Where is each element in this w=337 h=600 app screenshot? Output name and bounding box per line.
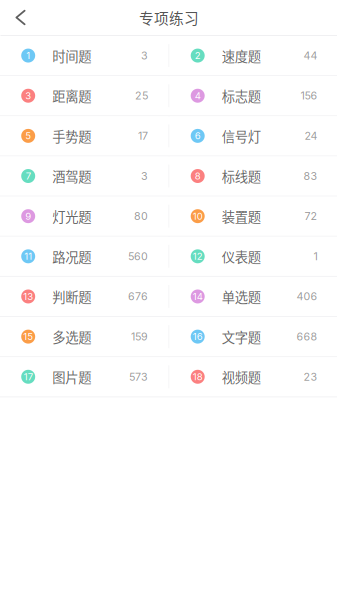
button[interactable]: 11 (0, 237, 168, 276)
staticText: 676 (128, 290, 148, 303)
staticText: 判断题 (52, 287, 91, 306)
button[interactable]: 13 (0, 277, 168, 316)
staticText: 44 (303, 49, 317, 62)
staticText: 3 (141, 49, 148, 62)
staticText: 图片题 (52, 367, 91, 386)
button[interactable]: 16 (169, 317, 337, 356)
staticText: 3 (25, 90, 31, 101)
staticText: 156 (300, 89, 317, 102)
staticText: 72 (304, 210, 317, 223)
staticText: 11 (24, 250, 32, 262)
staticText: 酒驾题 (52, 166, 91, 186)
staticText: 10 (193, 210, 203, 222)
staticText: 23 (303, 370, 317, 383)
button[interactable]: 18 (169, 357, 337, 396)
staticText: 信号灯 (222, 126, 261, 145)
staticText: 专项练习 (139, 7, 199, 28)
staticText: 14 (193, 291, 203, 302)
staticText: 1 (26, 50, 30, 61)
staticText: 标志题 (222, 86, 261, 105)
staticText: 13 (23, 291, 33, 302)
staticText: 路况题 (52, 247, 91, 266)
staticText: 25 (135, 89, 148, 102)
button[interactable]: 3 (0, 76, 168, 115)
staticText: 16 (193, 331, 203, 342)
staticText: 仪表题 (222, 247, 261, 266)
staticText: 573 (129, 370, 148, 383)
button[interactable]: 1 (0, 36, 168, 75)
staticText: 距离题 (52, 86, 91, 105)
staticText: 多选题 (52, 327, 91, 346)
staticText: 视频题 (222, 367, 261, 386)
staticText: 17 (24, 371, 33, 383)
staticText: 560 (128, 250, 148, 263)
staticText: 1 (313, 250, 317, 263)
button[interactable]: 7 (0, 156, 168, 195)
staticText: 406 (296, 290, 317, 303)
button[interactable]: 9 (0, 197, 168, 236)
staticText: 灯光题 (52, 206, 91, 226)
button[interactable]: 4 (169, 76, 337, 115)
staticText: 83 (303, 170, 317, 182)
staticText: 速度题 (222, 46, 261, 65)
staticText: 12 (193, 250, 203, 262)
staticText: 时间题 (52, 46, 91, 65)
staticText: 15 (23, 331, 33, 342)
staticText: 2 (195, 50, 201, 61)
button[interactable]: 14 (169, 277, 337, 316)
staticText: 24 (304, 129, 317, 142)
staticText: 手势题 (52, 126, 91, 145)
staticText: 单选题 (222, 287, 261, 306)
button[interactable]: Back (0, 1, 37, 34)
staticText: 3 (141, 170, 148, 182)
staticText: 4 (195, 90, 201, 101)
button[interactable]: 12 (169, 237, 337, 276)
button[interactable]: 2 (169, 36, 337, 75)
staticText: 668 (296, 330, 317, 343)
staticText: 17 (138, 129, 148, 142)
button[interactable]: 15 (0, 317, 168, 356)
button[interactable]: 17 (0, 357, 168, 396)
staticText: 文字题 (222, 327, 261, 346)
staticText: 18 (193, 371, 203, 383)
staticText: 80 (134, 210, 148, 223)
staticText: 6 (195, 130, 201, 142)
staticText: 8 (195, 170, 201, 182)
staticText: 装置题 (222, 206, 261, 226)
button[interactable]: 6 (169, 116, 337, 155)
staticText: 标线题 (222, 166, 261, 186)
staticText: 5 (25, 130, 31, 142)
button[interactable]: 5 (0, 116, 168, 155)
staticText: 7 (26, 170, 31, 182)
button[interactable]: 8 (169, 156, 337, 195)
staticText: 159 (131, 330, 148, 343)
staticText: 9 (25, 210, 31, 222)
button[interactable]: 10 (169, 197, 337, 236)
